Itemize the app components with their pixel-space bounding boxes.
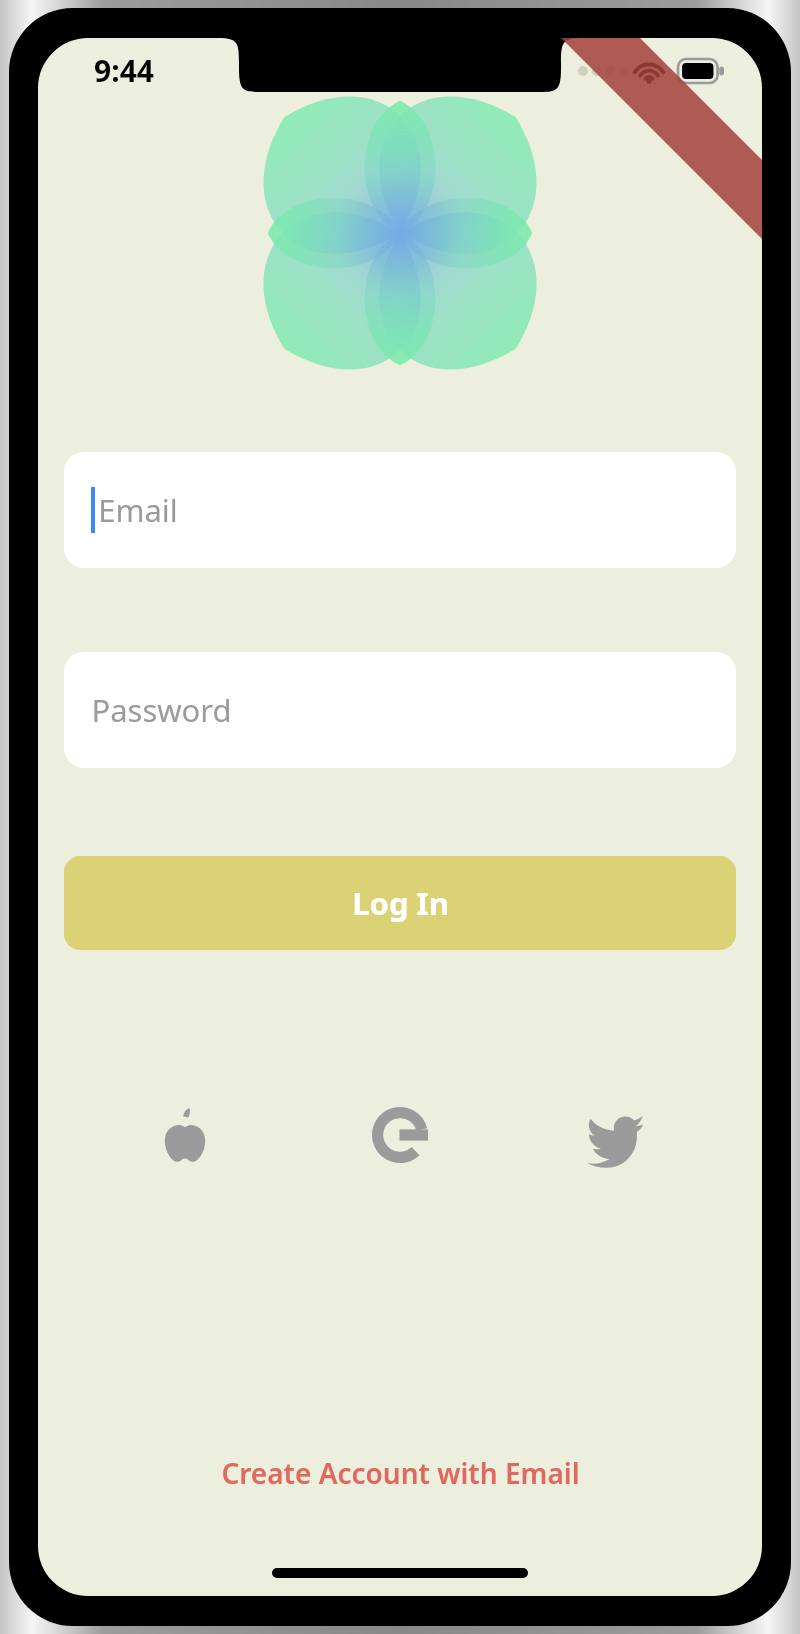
- staticText: 9:44: [94, 50, 154, 91]
- button[interactable]: Log In: [64, 856, 736, 950]
- staticText: Password: [91, 689, 232, 731]
- button[interactable]: Email: [64, 452, 736, 568]
- button[interactable]: Sign in with Apple: [150, 1100, 220, 1170]
- staticText: Email: [98, 489, 178, 531]
- button[interactable]: Create Account with Email: [38, 1454, 762, 1492]
- button[interactable]: Sign in with Google: [365, 1100, 435, 1170]
- staticText: Create Account with Email: [221, 1454, 580, 1492]
- button[interactable]: Password: [64, 652, 736, 768]
- staticText: Log In: [352, 882, 449, 924]
- button[interactable]: Sign in with Twitter: [580, 1100, 650, 1170]
